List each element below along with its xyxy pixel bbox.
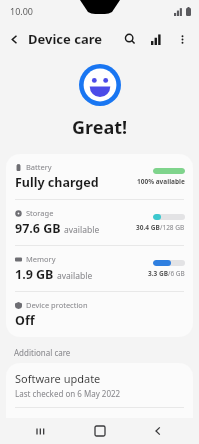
button[interactable]: Diagnostics (6, 408, 193, 444)
staticText: /6 GB (168, 269, 185, 278)
staticText: Last checked on 6 May 2022 (15, 388, 121, 399)
staticText: 3.3 GB (148, 269, 168, 278)
staticText: Diagnostics (15, 415, 75, 430)
button[interactable]: More options (169, 26, 195, 52)
staticText: Device protection (26, 300, 88, 310)
button[interactable]: Back (0, 25, 28, 53)
staticText: Memory (26, 254, 56, 264)
button[interactable]: Memory (6, 246, 193, 291)
button[interactable]: Home (83, 418, 117, 444)
button[interactable]: Search (117, 26, 143, 52)
staticText: Battery (26, 162, 52, 172)
button[interactable]: Storage (6, 200, 193, 245)
staticText: Device care (28, 30, 102, 48)
staticText: 97.6 GB (15, 220, 61, 237)
staticText: /128 GB (160, 223, 185, 232)
button[interactable]: Device protection (6, 292, 193, 337)
button[interactable]: Back (141, 418, 175, 444)
staticText: Additional care (14, 347, 71, 358)
button[interactable]: Usage statistics (143, 26, 169, 52)
staticText: Fully charged (15, 174, 99, 191)
staticText: 10.00 (10, 5, 34, 17)
staticText: 100% available (137, 177, 185, 186)
button[interactable]: Software update (6, 363, 193, 407)
staticText: 30.4 GB (136, 223, 160, 232)
staticText: Storage (26, 208, 54, 218)
staticText: 1.9 GB (15, 266, 54, 283)
staticText: available (64, 224, 100, 236)
staticText: Software update (15, 371, 101, 386)
staticText: Great! (72, 115, 128, 140)
button[interactable]: Recent apps (24, 418, 58, 444)
staticText: Off (15, 312, 35, 329)
button[interactable]: Battery (6, 154, 193, 199)
staticText: available (57, 270, 93, 282)
